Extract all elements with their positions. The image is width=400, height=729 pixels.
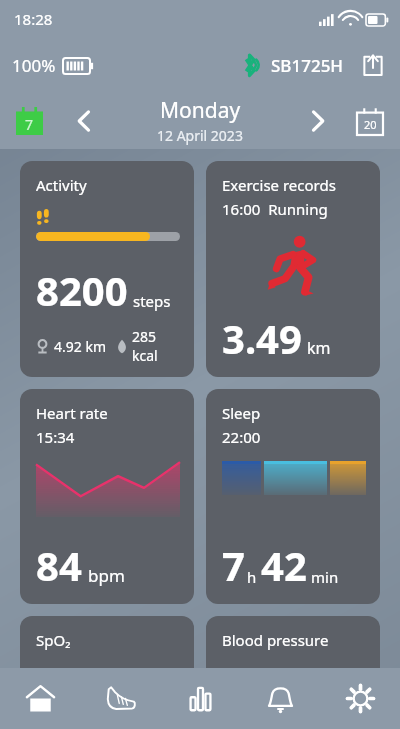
staticText: SpO₂: [36, 630, 71, 650]
staticText: Heart rate: [36, 403, 108, 423]
staticText: steps: [133, 291, 171, 311]
staticText: 16:00 Running: [222, 199, 328, 219]
button[interactable]: Sleep: [206, 389, 380, 604]
button[interactable]: SpO₂: [20, 616, 194, 729]
staticText: 4.92 km: [54, 337, 106, 356]
staticText: 15:34: [36, 427, 75, 447]
staticText: Blood pressure: [222, 630, 329, 650]
staticText: 100%: [12, 54, 56, 77]
staticText: h: [247, 567, 257, 587]
staticText: 7: [25, 115, 34, 134]
staticText: 285 kcal: [132, 327, 180, 365]
staticText: 3.49: [222, 311, 302, 365]
staticText: 42: [261, 538, 307, 592]
staticText: 20: [364, 117, 377, 132]
staticText: bpm: [88, 564, 125, 587]
staticText: 12 April 2023: [157, 126, 243, 145]
staticText: 18:28: [14, 9, 53, 29]
button[interactable]: Alarms: [240, 668, 320, 729]
staticText: km: [307, 337, 331, 359]
button[interactable]: Previous day: [62, 99, 106, 143]
button[interactable]: Blood pressure: [206, 616, 380, 729]
button[interactable]: Month view: [350, 101, 390, 141]
staticText: Monday: [160, 96, 241, 125]
button[interactable]: Week view: [10, 102, 48, 140]
staticText: Activity: [36, 175, 87, 195]
button[interactable]: Settings: [320, 668, 400, 729]
other: Bluetooth connected: [239, 52, 263, 78]
button[interactable]: Workout: [80, 668, 160, 729]
button[interactable]: Heart rate: [20, 389, 194, 604]
staticText: Sleep: [222, 403, 261, 423]
staticText: 8200: [36, 263, 128, 317]
button[interactable]: Statistics: [160, 668, 240, 729]
staticText: 7: [222, 538, 245, 592]
staticText: 84: [36, 538, 82, 592]
button[interactable]: Share: [356, 48, 390, 82]
staticText: SB1725H: [271, 54, 344, 77]
button[interactable]: Next day: [296, 99, 340, 143]
button[interactable]: Home: [0, 668, 80, 729]
button[interactable]: Activity: [20, 161, 194, 377]
button[interactable]: Exercise records: [206, 161, 380, 377]
staticText: Exercise records: [222, 175, 336, 195]
staticText: 22:00: [222, 427, 261, 447]
staticText: min: [311, 567, 339, 587]
